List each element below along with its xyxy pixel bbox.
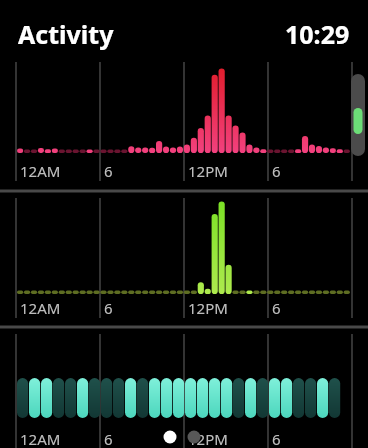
button[interactable]: Sleep chart [0,328,368,448]
button[interactable]: Heart rate chart [0,55,368,191]
button[interactable]: Steps chart [0,192,368,327]
